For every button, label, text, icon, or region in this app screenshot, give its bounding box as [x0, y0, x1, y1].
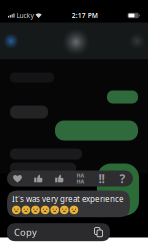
staticText: Lucky — [16, 11, 33, 20]
button[interactable]: Copy — [7, 223, 110, 241]
button[interactable]: Dislike — [49, 170, 70, 186]
button[interactable]: Haha — [70, 170, 91, 186]
staticText: ? — [119, 170, 125, 186]
staticText: HA — [76, 178, 84, 185]
staticText: HA — [76, 172, 84, 179]
button[interactable]: Emphasize — [91, 170, 112, 186]
staticText: Copy — [14, 226, 37, 238]
staticText: 2:17 PM — [72, 11, 98, 20]
button[interactable]: Love — [7, 170, 28, 186]
button[interactable]: Question mark — [112, 170, 133, 186]
staticText: It's was very great experience — [12, 193, 124, 204]
staticText: !! — [98, 170, 104, 186]
button[interactable]: Back — [0, 22, 22, 59]
button[interactable]: Like — [28, 170, 49, 186]
